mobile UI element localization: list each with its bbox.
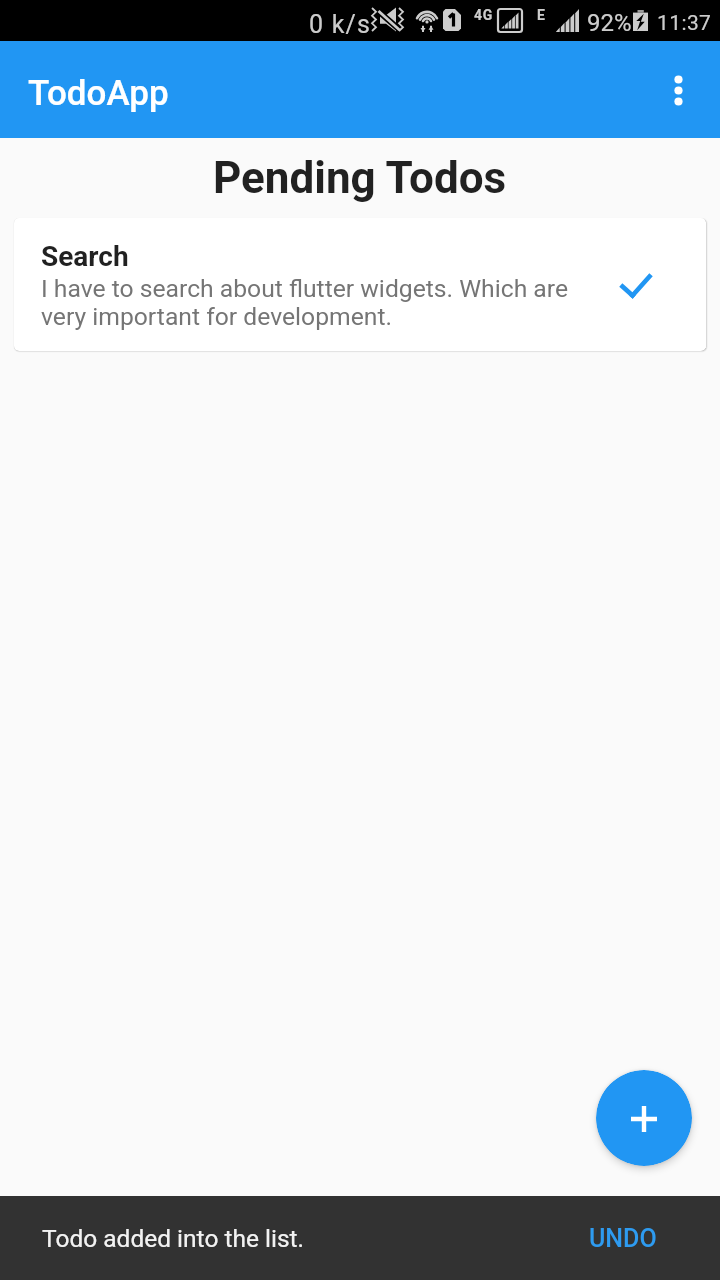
- staticText: 0 k/s: [309, 10, 372, 39]
- staticText: UNDO: [589, 1224, 657, 1253]
- button[interactable]: Search: [14, 218, 706, 351]
- staticText: 11:37: [657, 11, 712, 36]
- staticText: Search: [41, 240, 129, 273]
- staticText: TodoApp: [28, 73, 169, 114]
- staticText: Todo added into the list.: [42, 1224, 305, 1253]
- button[interactable]: UNDO: [581, 1214, 665, 1263]
- staticText: Pending Todos: [213, 152, 507, 204]
- staticText: 92%: [587, 9, 632, 37]
- staticText: E: [537, 7, 545, 23]
- button[interactable]: Add todo: [596, 1070, 692, 1166]
- button[interactable]: More options: [654, 66, 702, 114]
- staticText: I have to search about flutter widgets. …: [41, 274, 569, 331]
- button[interactable]: Mark complete: [600, 250, 672, 322]
- staticText: 4G: [474, 7, 494, 23]
